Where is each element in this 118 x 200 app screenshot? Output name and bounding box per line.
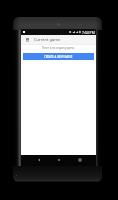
button[interactable]: Open navigation drawer bbox=[24, 36, 31, 43]
staticText: CREATE A NEW GAME bbox=[44, 55, 73, 59]
button[interactable]: Back bbox=[35, 156, 42, 163]
button[interactable]: CREATE A NEW GAME bbox=[23, 53, 94, 60]
button[interactable]: Home bbox=[55, 156, 62, 163]
staticText: Current game bbox=[34, 37, 61, 42]
button[interactable]: Recent apps bbox=[76, 156, 83, 163]
staticText: 7:04 PM bbox=[82, 30, 95, 35]
staticText: There is no ongoing game. bbox=[42, 46, 75, 50]
